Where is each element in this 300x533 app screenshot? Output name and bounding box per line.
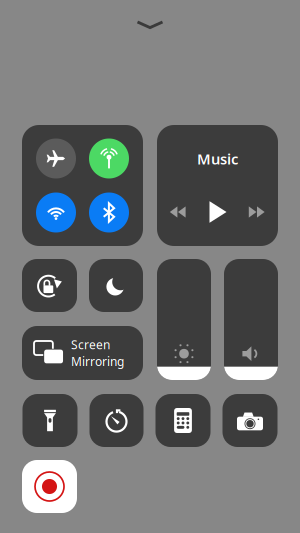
button[interactable]: Do Not Disturb [89, 259, 143, 312]
button[interactable]: Volume [224, 259, 278, 380]
staticText: Music [197, 149, 238, 168]
button[interactable]: Next Track [247, 202, 267, 222]
button[interactable]: Airplane Mode [36, 138, 76, 178]
button[interactable]: Play [205, 200, 229, 224]
button[interactable]: Screen Recording [22, 460, 77, 513]
button[interactable]: Flashlight [22, 394, 77, 447]
button[interactable]: Rotation Lock [22, 259, 77, 312]
staticText: Screen [71, 337, 110, 352]
button[interactable]: Previous Track [168, 202, 188, 222]
button[interactable]: Calculator [155, 394, 210, 447]
button[interactable]: Wi-Fi [36, 192, 76, 232]
button[interactable]: Screen [22, 326, 143, 380]
button[interactable]: Timer [89, 394, 143, 447]
staticText: Mirroring [71, 353, 124, 369]
button[interactable]: Brightness [157, 259, 211, 380]
button[interactable]: Camera [222, 394, 277, 447]
button[interactable]: Bluetooth [89, 192, 129, 232]
button[interactable]: Cellular Data [89, 138, 129, 178]
